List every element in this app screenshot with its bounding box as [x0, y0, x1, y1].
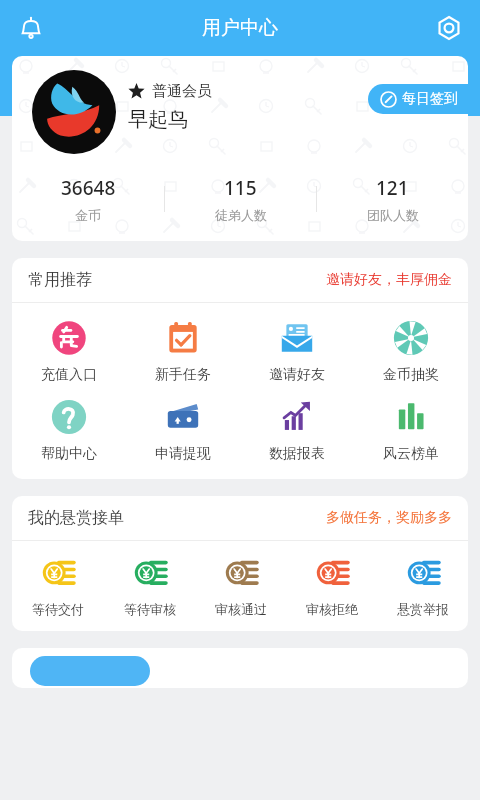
- staticText: 邀请好友: [269, 366, 325, 384]
- staticText: 121: [376, 175, 409, 201]
- staticText: 申请提现: [155, 445, 211, 463]
- button[interactable]: 等待审核: [104, 555, 195, 617]
- button[interactable]: 审核拒绝: [286, 555, 377, 617]
- staticText: 每日签到: [402, 90, 458, 108]
- button[interactable]: 审核通过: [195, 555, 286, 617]
- button[interactable]: [30, 656, 150, 686]
- staticText: 风云榜单: [383, 445, 439, 463]
- staticText: 早起鸟: [128, 107, 188, 132]
- staticText: 充值入口: [41, 366, 97, 384]
- button[interactable]: 风云榜单: [354, 398, 468, 463]
- staticText: 等待审核: [124, 601, 176, 617]
- button[interactable]: 常用推荐: [12, 258, 468, 302]
- staticText: 邀请好友，丰厚佣金: [326, 271, 452, 289]
- staticText: 用户中心: [202, 16, 278, 40]
- button[interactable]: 每日签到: [368, 84, 468, 114]
- button[interactable]: 金币抽奖: [354, 319, 468, 384]
- button[interactable]: 等待交付: [12, 555, 104, 617]
- button[interactable]: 充值入口: [12, 319, 126, 384]
- staticText: 数据报表: [269, 445, 325, 463]
- staticText: 常用推荐: [28, 270, 92, 290]
- staticText: 等待交付: [32, 601, 84, 617]
- staticText: 团队人数: [367, 207, 419, 223]
- button[interactable]: 我的悬赏接单: [12, 496, 468, 540]
- staticText: 普通会员: [152, 82, 212, 101]
- staticText: 新手任务: [155, 366, 211, 384]
- button[interactable]: 申请提现: [126, 398, 240, 463]
- button[interactable]: 邀请好友: [240, 319, 354, 384]
- button[interactable]: 新手任务: [126, 319, 240, 384]
- button[interactable]: [32, 70, 116, 154]
- staticText: 36648: [61, 175, 116, 201]
- staticText: 悬赏举报: [397, 601, 449, 617]
- staticText: 帮助中心: [41, 445, 97, 463]
- button[interactable]: Notifications: [10, 7, 52, 49]
- staticText: 金币抽奖: [383, 366, 439, 384]
- staticText: 徒弟人数: [215, 207, 267, 223]
- staticText: 审核拒绝: [306, 601, 358, 617]
- button[interactable]: Settings: [428, 7, 470, 49]
- staticText: 金币: [75, 207, 101, 223]
- staticText: 我的悬赏接单: [28, 508, 124, 528]
- button[interactable]: 悬赏举报: [377, 555, 468, 617]
- staticText: 审核通过: [215, 601, 267, 617]
- button[interactable]: 帮助中心: [12, 398, 126, 463]
- button[interactable]: 数据报表: [240, 398, 354, 463]
- staticText: 多做任务，奖励多多: [326, 509, 452, 527]
- staticText: 115: [224, 175, 257, 201]
